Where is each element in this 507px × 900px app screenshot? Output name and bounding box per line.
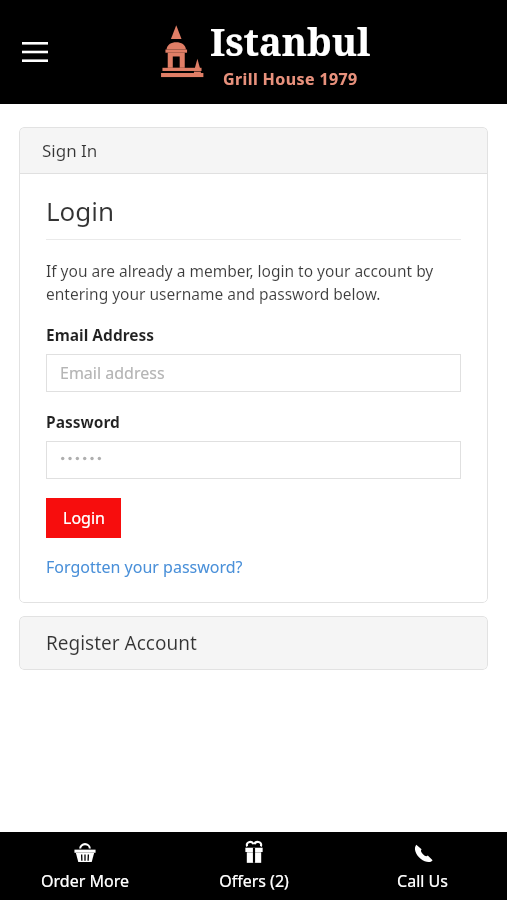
staticText: Email Address [46, 324, 155, 345]
button[interactable]: Call Us [338, 832, 507, 900]
staticText: Login [63, 507, 105, 529]
staticText: Order More [41, 870, 129, 892]
button[interactable]: Sign In [20, 128, 487, 173]
staticText: Sign In [42, 139, 98, 162]
button[interactable]: Forgotten your password? [46, 556, 243, 578]
staticText: Offers (2) [219, 870, 289, 892]
button[interactable]: Offers (2) [169, 832, 338, 900]
button[interactable]: Register Account [20, 617, 487, 669]
button[interactable]: Order More [0, 832, 169, 900]
button[interactable]: Email address [46, 354, 461, 392]
button[interactable] [46, 441, 461, 479]
staticText: Password [46, 411, 120, 432]
staticText: Login [46, 193, 115, 228]
button[interactable]: Login [46, 498, 121, 538]
staticText: Grill House 1979 [223, 68, 358, 90]
staticText: Register Account [46, 630, 197, 656]
staticText: Forgotten your password? [46, 556, 243, 578]
staticText: Call Us [397, 870, 448, 892]
staticText: If you are already a member, login to yo… [46, 260, 461, 305]
button[interactable]: Menu [12, 29, 58, 75]
staticText: Istanbul [210, 15, 371, 67]
staticText: Email address [60, 362, 165, 384]
